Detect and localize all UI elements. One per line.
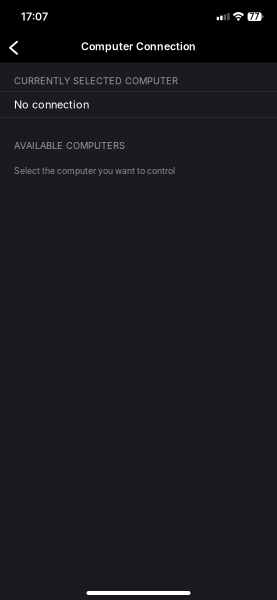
staticText: 77 [250, 12, 260, 22]
staticText: CURRENTLY SELECTED COMPUTER [14, 75, 178, 86]
staticText: AVAILABLE COMPUTERS [14, 140, 125, 151]
button[interactable]: Back [0, 30, 30, 62]
button[interactable]: No connection [0, 92, 277, 117]
staticText: Select the computer you want to control [14, 166, 175, 176]
staticText: No connection [14, 98, 89, 111]
staticText: Computer Connection [81, 40, 196, 53]
staticText: 17:07 [21, 10, 48, 23]
